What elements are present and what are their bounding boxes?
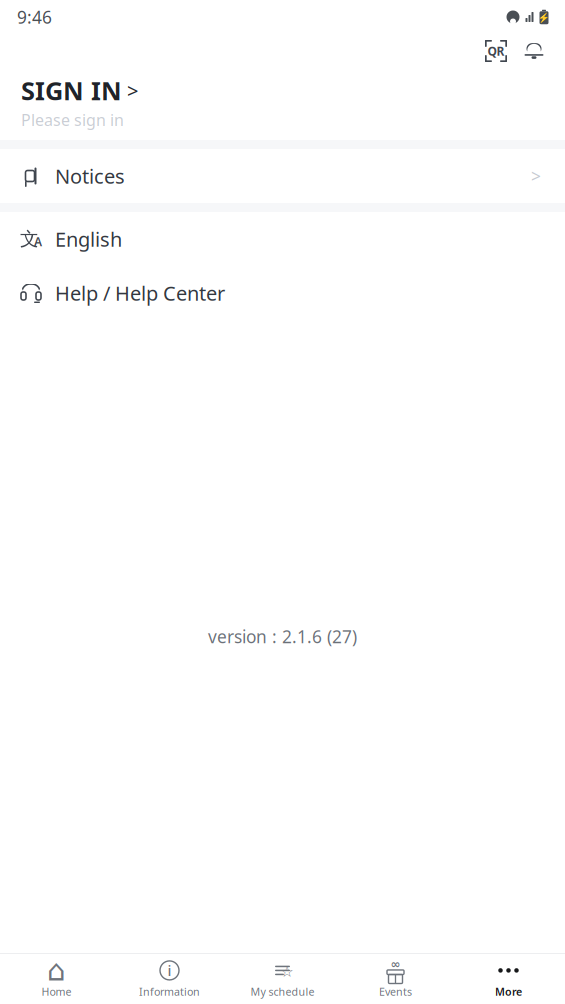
staticText: SIGN IN [21, 74, 122, 107]
button[interactable]: Notices [0, 149, 565, 203]
button[interactable]: ∞ [339, 954, 452, 1004]
staticText: My schedule [250, 984, 314, 999]
staticText: > [127, 77, 138, 104]
staticText: 文 [20, 227, 39, 250]
staticText: Notices [55, 163, 125, 189]
staticText: QR [487, 43, 504, 59]
button[interactable]: Notifications [515, 32, 553, 70]
staticText: English [55, 226, 122, 252]
staticText: Information [139, 984, 200, 999]
staticText: ∞ [390, 957, 400, 971]
staticText: A [34, 234, 42, 249]
staticText: ⚡ [538, 12, 550, 23]
button[interactable]: More [452, 954, 565, 1004]
staticText: ⌂ [47, 954, 66, 987]
staticText: Help / Help Center [55, 280, 225, 306]
staticText: Home [41, 984, 71, 999]
staticText: i [167, 961, 171, 980]
button[interactable]: ⌂ [0, 954, 113, 1004]
staticText: Please sign in [21, 109, 124, 130]
staticText: > [531, 164, 541, 187]
button[interactable]: Help / Help Center [0, 266, 565, 320]
staticText: version : 2.1.6 (27) [208, 625, 357, 648]
staticText: ☆ [280, 963, 293, 980]
staticText: More [495, 984, 522, 999]
button[interactable]: 文 [0, 212, 565, 266]
button[interactable]: SIGN IN [0, 72, 565, 132]
staticText: Events [379, 984, 412, 999]
button[interactable]: Scan QR code [477, 32, 515, 70]
staticText: 9:46 [17, 5, 52, 28]
button[interactable]: i [113, 954, 226, 1004]
button[interactable]: ☆ [226, 954, 339, 1004]
